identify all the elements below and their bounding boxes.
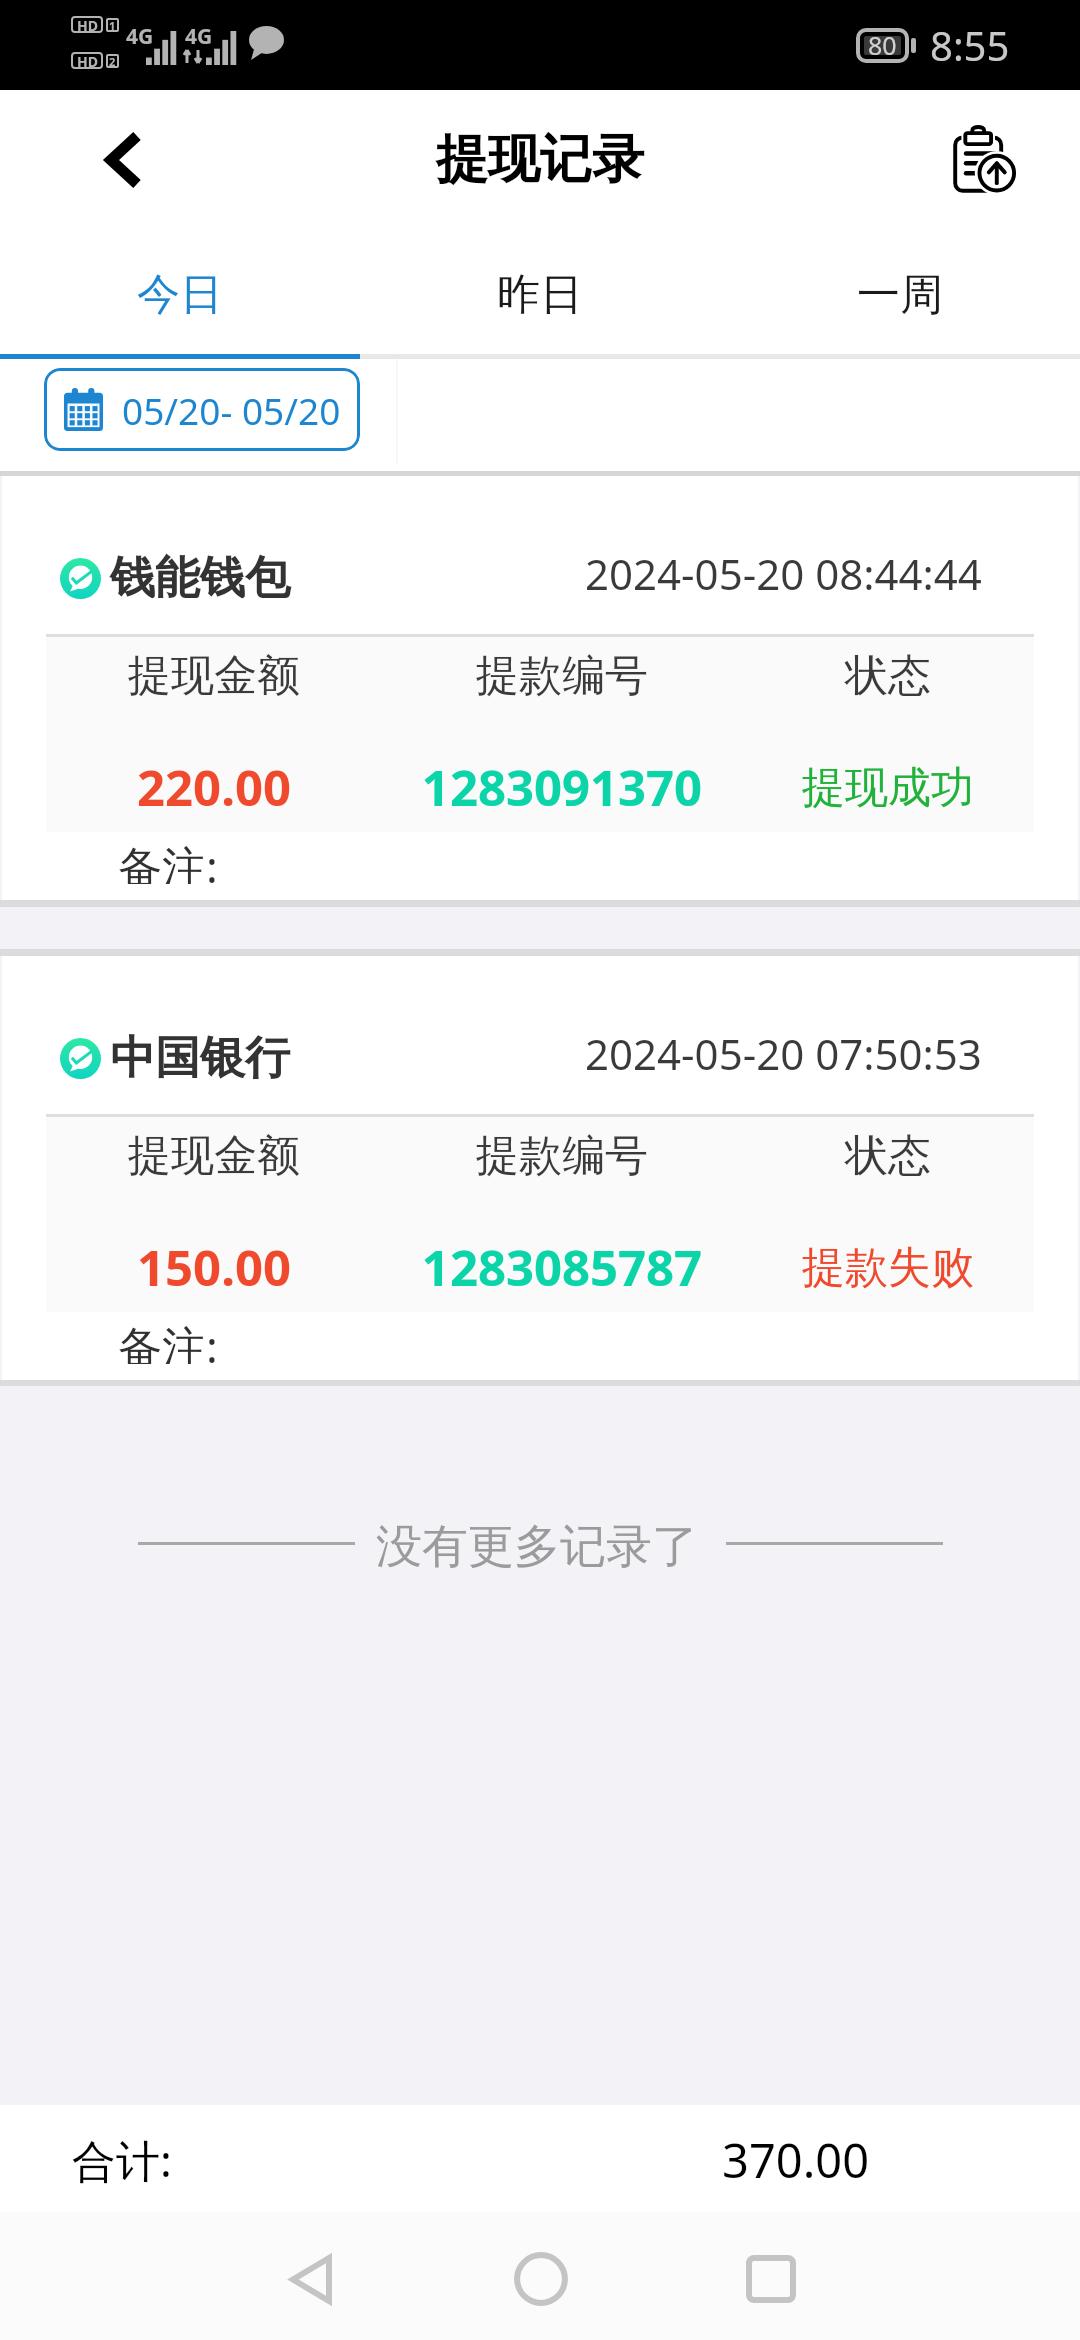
staticText: 中国银行: [110, 1030, 290, 1087]
button[interactable]: 一周: [720, 230, 1080, 354]
staticText: 钱能钱包: [110, 550, 290, 607]
staticText: 提现记录: [436, 127, 644, 193]
button[interactable]: 昨日: [360, 230, 720, 354]
staticText: 4G: [185, 22, 213, 51]
button[interactable]: Export records: [888, 90, 1080, 230]
staticText: HD: [77, 52, 98, 69]
staticText: 150.00: [46, 1234, 382, 1301]
staticText: 状态: [742, 1129, 1034, 1183]
staticText: 1283085787: [382, 1234, 742, 1301]
staticText: 2: [109, 54, 116, 68]
staticText: 状态: [742, 649, 1034, 703]
staticText: 提现金额: [46, 1129, 382, 1183]
button[interactable]: Recent apps: [711, 2219, 831, 2339]
staticText: 4G: [126, 22, 154, 51]
button[interactable]: Back: [0, 90, 248, 230]
staticText: 备注:: [118, 1316, 218, 1364]
staticText: 提现金额: [46, 649, 382, 703]
staticText: 370.00: [722, 2128, 870, 2192]
staticText: 昨日: [497, 268, 583, 322]
staticText: 8:55: [930, 18, 1010, 72]
staticText: 合计:: [72, 2130, 172, 2190]
staticText: HD: [77, 16, 98, 33]
staticText: 2024-05-20 07:50:53: [585, 1025, 982, 1082]
staticText: 2024-05-20 08:44:44: [585, 545, 982, 602]
staticText: 提款编号: [382, 649, 742, 703]
staticText: 提款失败: [742, 1241, 1034, 1295]
button[interactable]: Home: [481, 2219, 601, 2339]
staticText: 1: [109, 18, 116, 32]
button[interactable]: 今日: [0, 230, 360, 354]
button[interactable]: 中国银行: [2, 956, 1078, 1380]
staticText: 没有更多记录了: [376, 1518, 698, 1576]
staticText: 220.00: [46, 754, 382, 821]
staticText: 05/20- 05/20: [122, 385, 341, 435]
staticText: 80: [868, 28, 897, 62]
button[interactable]: 钱能钱包: [2, 476, 1078, 900]
button[interactable]: 05/20- 05/20: [44, 368, 360, 451]
staticText: 今日: [137, 268, 223, 322]
staticText: 提现成功: [742, 761, 1034, 815]
staticText: 提款编号: [382, 1129, 742, 1183]
button[interactable]: Back: [251, 2219, 371, 2339]
staticText: 1283091370: [382, 754, 742, 821]
staticText: 一周: [857, 268, 943, 322]
staticText: 备注:: [118, 836, 218, 884]
